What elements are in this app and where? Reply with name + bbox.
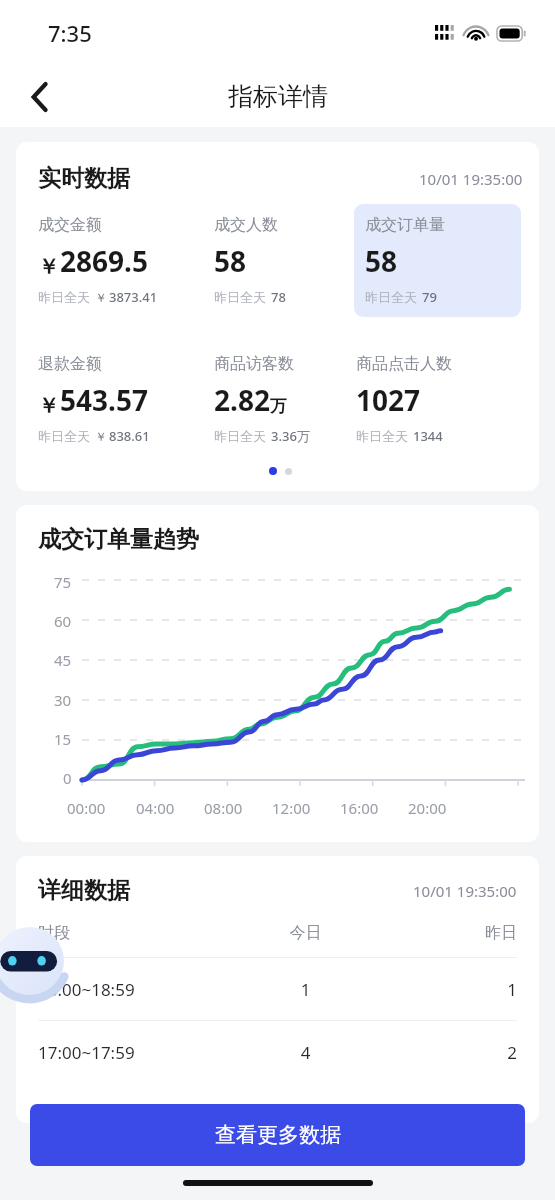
button[interactable]: Back [18,75,62,119]
staticText: 60 [54,611,72,631]
staticText: 17:00~17:59 [38,1041,235,1064]
staticText: 10/01 19:35:00 [413,881,517,901]
staticText: 2 [376,1041,517,1064]
staticText: 1 [235,978,376,1001]
button[interactable]: 18:00~18:59 [38,958,517,1020]
staticText: 0 [63,768,72,788]
staticText: 3.36万 [271,427,310,445]
staticText: 成交订单量 [365,215,445,235]
staticText: ￥ [38,254,59,280]
staticText: 昨日全天 [38,289,90,305]
staticText: 08:00 [204,798,243,818]
staticText: 1027 [356,381,421,419]
staticText: 成交金额 [38,215,102,235]
staticText: 15 [54,729,72,749]
staticText: ￥ [95,290,107,305]
staticText: 4 [235,1041,376,1064]
staticText: 1 [376,978,517,1001]
staticText: 58 [365,242,398,280]
staticText: 万 [270,396,287,417]
button[interactable]: 成交人数 [214,215,356,306]
staticText: 2869.5 [60,242,148,280]
staticText: ￥ [95,429,107,444]
staticText: 75 [54,572,72,592]
staticText: 昨日全天 [356,428,408,444]
staticText: 商品点击人数 [356,354,452,374]
staticText: 昨日全天 [38,428,90,444]
staticText: 实时数据 [38,164,130,193]
button[interactable]: 查看更多数据 [30,1104,525,1166]
staticText: 45 [54,650,72,670]
staticText: 时段 [38,923,235,943]
staticText: 1344 [413,427,443,445]
staticText: 查看更多数据 [215,1122,341,1148]
staticText: 昨日全天 [214,428,266,444]
staticText: 昨日 [376,923,517,943]
staticText: 00:00 [67,798,106,818]
staticText: ￥ [38,393,59,419]
staticText: 成交订单量趋势 [38,525,199,554]
staticText: 12:00 [272,798,311,818]
staticText: 指标详情 [228,81,328,112]
button[interactable]: 成交金额 [38,215,214,306]
staticText: 7:35 [48,18,92,48]
staticText: 3873.41 [109,288,158,306]
staticText: 退款金额 [38,354,102,374]
staticText: 详细数据 [38,876,130,905]
staticText: 04:00 [136,798,175,818]
staticText: 商品访客数 [214,354,294,374]
button[interactable]: Assistant [0,920,76,1006]
staticText: 20:00 [408,798,447,818]
button[interactable]: 退款金额 [38,354,214,445]
staticText: 78 [271,288,286,306]
button[interactable]: 商品访客数 [214,354,356,445]
staticText: 2.82 [214,381,270,419]
button[interactable]: 商品点击人数 [356,354,523,445]
staticText: 18:00~18:59 [38,978,235,1001]
staticText: 30 [54,690,72,710]
staticText: 10/01 19:35:00 [419,169,523,189]
staticText: 今日 [235,923,376,943]
staticText: 838.61 [109,427,150,445]
staticText: 543.57 [60,381,148,419]
staticText: 79 [422,288,437,306]
button[interactable]: 17:00~17:59 [38,1021,517,1083]
staticText: 成交人数 [214,215,278,235]
staticText: 16:00 [340,798,379,818]
button[interactable]: 成交订单量 [354,204,521,317]
staticText: 昨日全天 [214,289,266,305]
staticText: 58 [214,242,247,280]
staticText: 昨日全天 [365,289,417,305]
